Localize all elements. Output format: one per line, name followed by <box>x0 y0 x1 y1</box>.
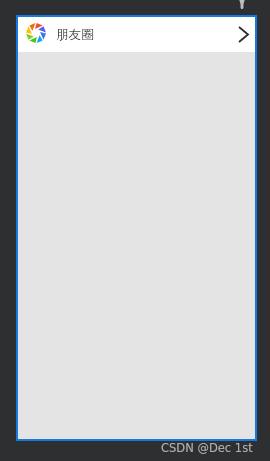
button[interactable]: 朋友圈 <box>18 17 255 52</box>
staticText: CSDN @Dec 1st <box>161 441 253 454</box>
other: Open <box>238 26 249 43</box>
staticText: 朋友圈 <box>56 27 94 43</box>
